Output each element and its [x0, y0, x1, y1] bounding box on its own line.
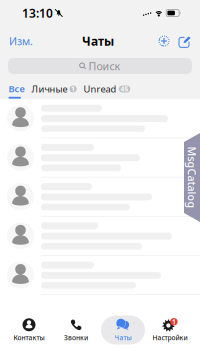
button[interactable]: Чат	[0, 99, 200, 138]
staticText: Чаты	[82, 33, 114, 49]
staticText: Чаты	[114, 333, 131, 342]
button[interactable]: Чаты	[99, 315, 146, 344]
staticText: Настройки	[152, 333, 187, 342]
button[interactable]: Unread	[84, 85, 130, 93]
button[interactable]: Личные	[31, 85, 84, 93]
staticText: Звонки	[64, 333, 88, 342]
staticText: 45	[120, 85, 128, 93]
staticText: 1	[71, 85, 75, 93]
button[interactable]: 1	[146, 315, 193, 344]
staticText: 13:10	[22, 5, 53, 21]
button[interactable]: Чат	[0, 138, 200, 177]
staticText: 1	[172, 317, 176, 326]
button[interactable]: Чат	[0, 217, 200, 255]
staticText: Поиск	[89, 59, 121, 73]
button[interactable]: Все	[0, 85, 31, 99]
button[interactable]: Написать	[171, 35, 200, 47]
button[interactable]: Поиск	[0, 58, 200, 74]
button[interactable]: Новый чат	[157, 34, 171, 48]
button[interactable]: Чат	[0, 256, 200, 294]
staticText: Unread	[84, 83, 117, 95]
button[interactable]: MsgCatalog	[184, 133, 200, 222]
button[interactable]: Изм.	[0, 31, 39, 51]
staticText: Личные	[31, 83, 67, 95]
staticText: Изм.	[9, 34, 33, 48]
staticText: Контакты	[13, 333, 44, 342]
button[interactable]: Звонки	[52, 315, 99, 344]
staticText: Все	[8, 82, 24, 95]
button[interactable]: Чат	[0, 177, 200, 216]
button[interactable]: Контакты	[5, 315, 52, 344]
staticText: MsgCatalog	[161, 170, 200, 185]
